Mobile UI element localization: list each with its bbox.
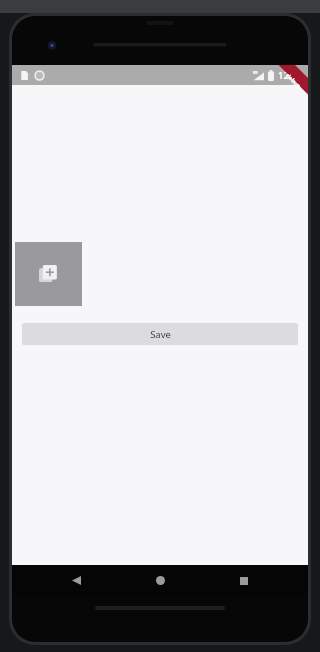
button[interactable]: Save	[22, 323, 298, 345]
staticText: debug	[285, 72, 303, 89]
staticText: Save	[150, 328, 171, 341]
button[interactable]: Add image	[15, 242, 82, 306]
staticText: 12:26	[278, 69, 303, 82]
button[interactable]: Back	[56, 565, 96, 596]
button[interactable]: Home	[140, 565, 180, 596]
button[interactable]: Recent apps	[224, 565, 264, 596]
